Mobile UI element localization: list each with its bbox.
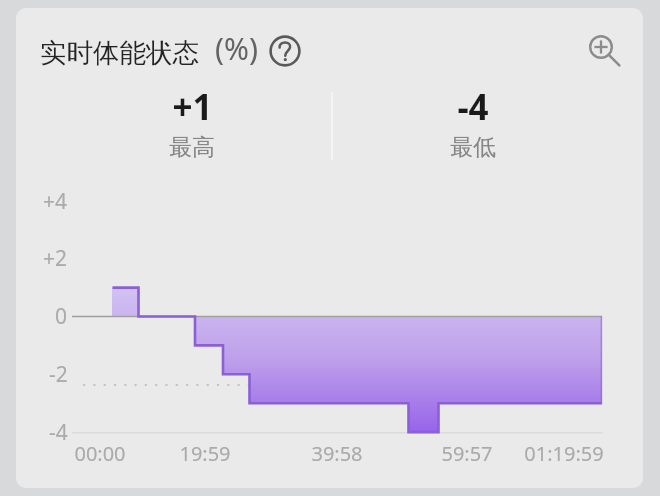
staticText: 最低 [450, 133, 496, 161]
staticText: 0 [55, 302, 68, 330]
staticText: 00:00 [74, 440, 126, 466]
staticText: +4 [43, 187, 68, 215]
staticText: 59:57 [441, 440, 493, 466]
staticText: -4 [457, 83, 489, 123]
staticText: +1 [172, 83, 213, 123]
button[interactable]: -4 [393, 83, 553, 161]
staticText: 实时体能状态 [40, 36, 199, 69]
staticText: 最高 [169, 133, 215, 161]
staticText: 39:58 [311, 440, 363, 466]
staticText: 19:59 [179, 440, 231, 466]
staticText: -2 [49, 360, 68, 388]
staticText: (%) [215, 28, 258, 69]
button[interactable]: Zoom in [581, 27, 625, 71]
staticText: 01:19:59 [524, 440, 604, 466]
button[interactable]: Help [265, 31, 305, 71]
staticText: -4 [49, 418, 68, 446]
staticText: +2 [43, 244, 68, 272]
button[interactable]: +1 [112, 83, 272, 161]
